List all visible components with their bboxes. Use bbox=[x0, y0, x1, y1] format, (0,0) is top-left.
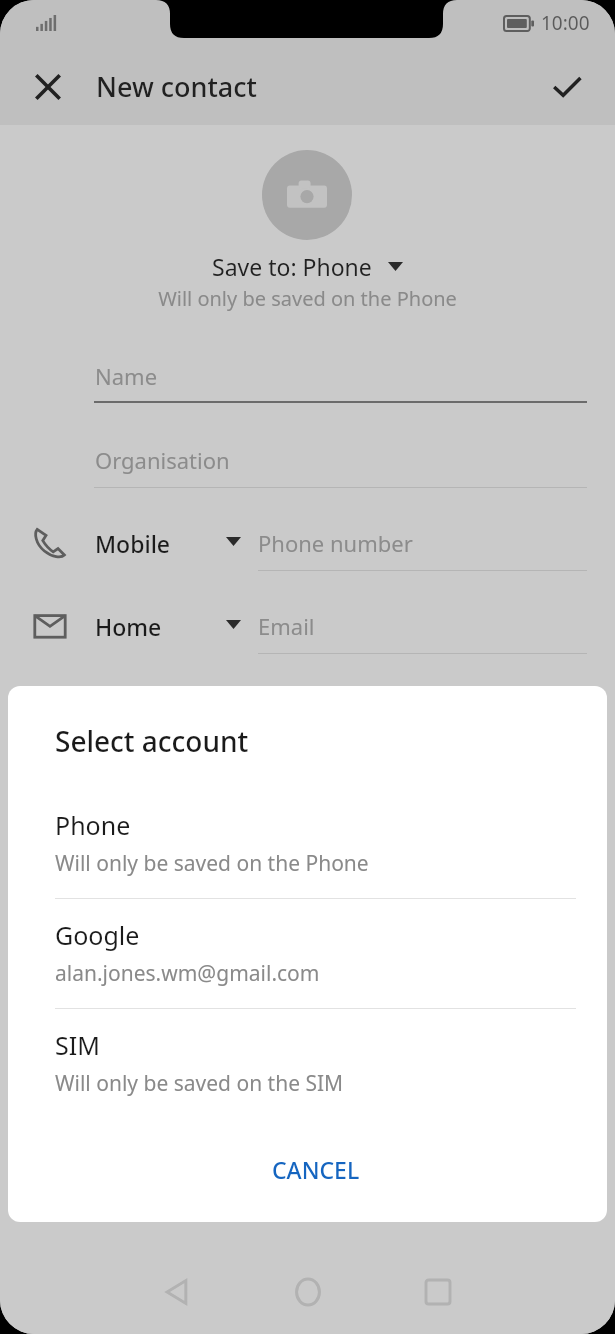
staticText: Will only be saved on the Phone bbox=[55, 849, 369, 878]
staticText: Will only be saved on the SIM bbox=[55, 1069, 344, 1098]
button[interactable]: Phone bbox=[8, 796, 607, 892]
staticText: SIM bbox=[55, 1028, 100, 1062]
button[interactable]: Home bbox=[271, 1255, 345, 1329]
staticText: Select account bbox=[55, 722, 249, 760]
button[interactable]: Google bbox=[8, 906, 607, 1002]
staticText: 10:00 bbox=[541, 10, 590, 36]
button[interactable]: SIM bbox=[8, 1016, 607, 1112]
staticText: Save to: Phone bbox=[212, 251, 372, 282]
staticText: Email bbox=[258, 611, 315, 641]
staticText: Organisation bbox=[95, 445, 230, 475]
staticText: Mobile bbox=[95, 528, 171, 559]
button[interactable]: CANCEL bbox=[240, 1141, 392, 1197]
staticText: New contact bbox=[96, 68, 257, 105]
button[interactable]: Recent apps bbox=[401, 1255, 475, 1329]
button[interactable]: Close bbox=[16, 55, 80, 119]
button[interactable]: Back bbox=[140, 1255, 214, 1329]
staticText: Home bbox=[95, 611, 162, 642]
staticText: Phone number bbox=[258, 528, 413, 558]
staticText: Phone bbox=[55, 808, 131, 842]
staticText: CANCEL bbox=[272, 1154, 360, 1185]
button[interactable]: Save bbox=[535, 55, 599, 119]
staticText: Will only be saved on the Phone bbox=[0, 285, 615, 312]
button[interactable]: Add photo bbox=[262, 150, 352, 240]
staticText: alan.jones.wm@gmail.com bbox=[55, 959, 320, 988]
button[interactable]: Save to: Phone bbox=[0, 248, 615, 284]
staticText: Google bbox=[55, 918, 140, 952]
staticText: Name bbox=[95, 361, 158, 391]
